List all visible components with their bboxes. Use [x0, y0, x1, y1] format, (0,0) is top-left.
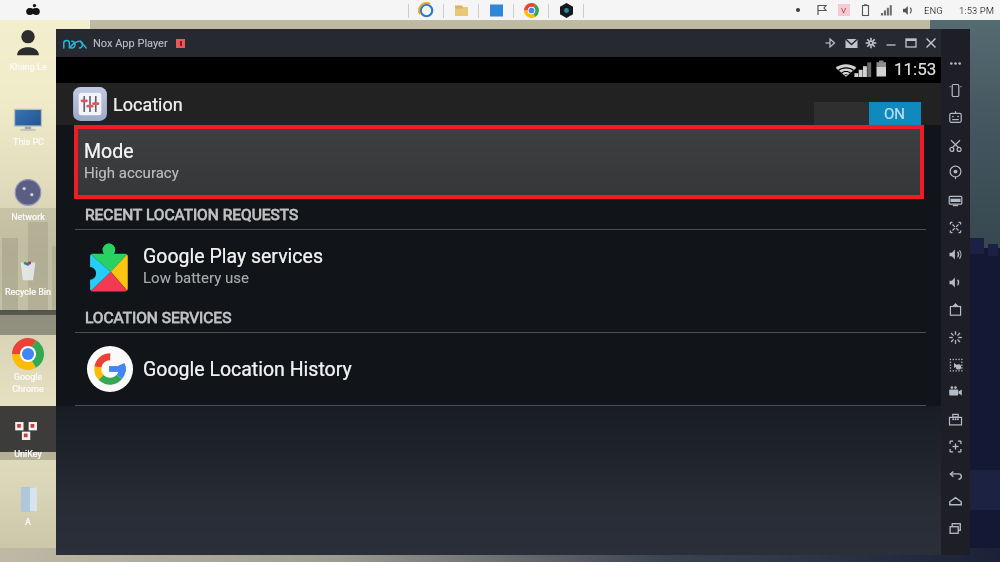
button[interactable]: Fullscreen: [941, 214, 970, 240]
staticText: A: [25, 517, 31, 528]
staticText: Nox App Player: [93, 37, 168, 50]
button[interactable]: Khang Le: [0, 28, 56, 73]
other: Battery: [874, 60, 889, 79]
button[interactable]: Settings: [861, 29, 881, 57]
button[interactable]: Shake: [941, 77, 970, 103]
button[interactable]: Google Chrome: [12, 338, 44, 370]
button[interactable]: More options: [941, 50, 970, 76]
other: Signal: [880, 4, 893, 17]
staticText: 1:53 PM: [959, 5, 994, 16]
button[interactable]: A: [0, 483, 56, 528]
button[interactable]: Home: [941, 488, 970, 514]
button[interactable]: Google Chrome: [0, 338, 56, 394]
staticText: V: [841, 6, 847, 15]
staticText: ENG: [924, 5, 943, 16]
button[interactable]: Back: [941, 461, 970, 487]
button[interactable]: Location switch on: [814, 102, 921, 125]
button[interactable]: UniKey: [0, 415, 56, 460]
button[interactable]: Pin window: [821, 29, 841, 57]
button[interactable]: Close: [921, 29, 941, 57]
staticText: Low battery use: [143, 269, 249, 287]
button[interactable]: Cut: [941, 132, 970, 158]
button[interactable]: Macro recorder: [941, 351, 970, 377]
other: Flag: [815, 3, 829, 17]
button[interactable]: File Explorer: [454, 3, 469, 18]
button[interactable]: Set location: [941, 159, 970, 185]
staticText: Mode: [84, 140, 134, 163]
staticText: 11:53: [894, 59, 937, 79]
staticText: ON: [884, 105, 906, 123]
button[interactable]: Recycle Bin: [0, 253, 56, 298]
button[interactable]: Recent apps: [941, 515, 970, 541]
button[interactable]: Messages: [841, 29, 861, 57]
button[interactable]: Network: [0, 178, 56, 223]
button[interactable]: Screenshot: [941, 433, 970, 459]
staticText: RECENT LOCATION REQUESTS: [85, 206, 299, 224]
staticText: Google Chrome: [12, 372, 44, 394]
button[interactable]: App: [489, 3, 504, 18]
button[interactable]: Volume up: [941, 241, 970, 267]
button[interactable]: Internet Explorer: [419, 3, 434, 18]
button[interactable]: Virtual keyboard: [941, 104, 970, 130]
button[interactable]: Volume down: [941, 269, 970, 295]
other: Volume: [901, 4, 914, 17]
button[interactable]: This PC: [0, 103, 56, 148]
staticText: Google Play services: [143, 245, 323, 268]
button[interactable]: Toolbox: [941, 406, 970, 432]
button[interactable]: Shake device: [941, 324, 970, 350]
staticText: Khang Le: [9, 62, 47, 73]
staticText: LOCATION SERVICES: [85, 309, 232, 327]
staticText: Google Location History: [143, 358, 352, 381]
staticText: High accuracy: [84, 164, 179, 182]
button[interactable]: Nox App Player: [559, 3, 574, 18]
button[interactable]: Maximize: [901, 29, 921, 57]
button[interactable]: Google Play services: [56, 230, 941, 302]
button[interactable]: Minimize: [881, 29, 901, 57]
button[interactable]: Google Chrome: [524, 3, 539, 18]
button[interactable]: Install APK: [941, 296, 970, 322]
staticText: Network: [11, 212, 45, 223]
button[interactable]: Google Location History: [56, 333, 941, 405]
button[interactable]: Screen: [941, 187, 970, 213]
button[interactable]: Record screen: [941, 378, 970, 404]
other: Battery: [859, 4, 872, 17]
staticText: This PC: [13, 137, 44, 148]
other: Wi-Fi: [835, 61, 857, 78]
staticText: Recycle Bin: [5, 287, 51, 298]
staticText: UniKey: [14, 449, 42, 460]
other: Signal strength: [854, 61, 873, 78]
staticText: Location: [113, 94, 183, 115]
button[interactable]: Mode: [78, 129, 920, 195]
